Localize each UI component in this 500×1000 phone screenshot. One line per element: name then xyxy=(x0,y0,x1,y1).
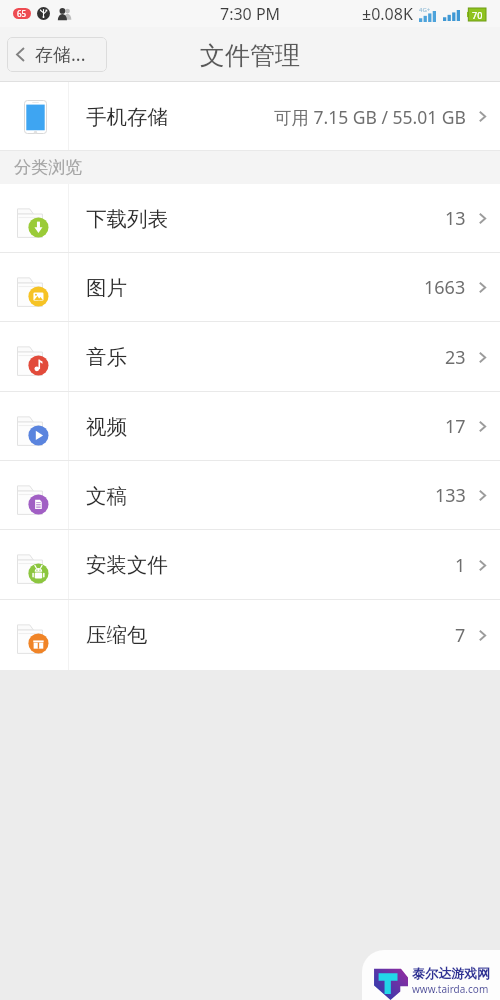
staticText: 视频 xyxy=(86,414,127,440)
button[interactable]: 音乐 xyxy=(0,322,500,392)
staticText: 17 xyxy=(445,414,466,439)
staticText: 13 xyxy=(445,206,466,231)
staticText: 手机存储 xyxy=(86,104,168,130)
button[interactable]: 安装文件 xyxy=(0,530,500,600)
staticText: 音乐 xyxy=(86,344,127,370)
staticText: 1663 xyxy=(424,275,466,300)
staticText: 下载列表 xyxy=(86,206,168,232)
button[interactable]: 压缩包 xyxy=(0,600,500,670)
staticText: 7:30 PM xyxy=(220,3,281,25)
staticText: 23 xyxy=(445,345,466,370)
staticText: 133 xyxy=(435,483,466,508)
staticText: 分类浏览 xyxy=(14,157,82,178)
button[interactable]: 视频 xyxy=(0,392,500,461)
button[interactable]: 存储... xyxy=(7,37,107,72)
staticText: 图片 xyxy=(86,275,127,301)
staticText: 4G+ xyxy=(419,6,431,14)
staticText: 存储... xyxy=(35,42,86,67)
button[interactable]: 图片 xyxy=(0,253,500,322)
button[interactable]: 手机存储 xyxy=(0,82,500,151)
staticText: 65 xyxy=(17,8,27,19)
staticText: 1 xyxy=(455,553,466,578)
staticText: 70 xyxy=(472,9,483,21)
button[interactable]: 下载列表 xyxy=(0,184,500,253)
staticText: 安装文件 xyxy=(86,552,168,578)
staticText: 可用 7.15 GB / 55.01 GB xyxy=(274,105,466,129)
staticText: 文件管理 xyxy=(200,40,300,71)
staticText: 压缩包 xyxy=(86,622,148,648)
staticText: 文稿 xyxy=(86,483,127,509)
button[interactable]: 文稿 xyxy=(0,461,500,530)
staticText: ±0.08K xyxy=(362,3,413,25)
staticText: 泰尔达游戏网 xyxy=(412,965,490,981)
staticText: www.tairda.com xyxy=(412,982,489,996)
staticText: 7 xyxy=(455,623,466,648)
